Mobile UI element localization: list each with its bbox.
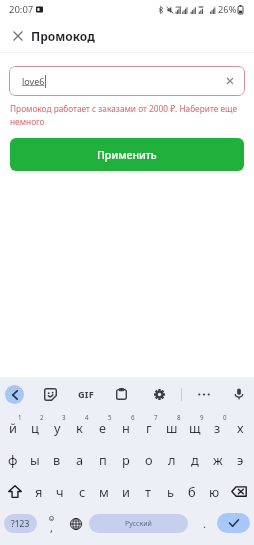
button[interactable]: г — [137, 411, 160, 443]
button[interactable]: ю — [203, 475, 225, 507]
button[interactable]: ц — [24, 411, 46, 443]
button[interactable]: ф — [2, 443, 24, 475]
button[interactable]: Очистить — [221, 72, 239, 90]
button[interactable]: ь — [159, 475, 181, 507]
button[interactable]: с — [71, 475, 93, 507]
staticText: Применить — [97, 148, 157, 162]
staticText: ц — [31, 419, 39, 436]
button[interactable]: love6 — [9, 66, 245, 96]
button[interactable]: ?123 — [4, 514, 37, 533]
button[interactable]: п — [91, 443, 114, 475]
staticText: г — [146, 419, 152, 436]
button[interactable]: ч — [49, 475, 71, 507]
button[interactable]: а — [68, 443, 91, 475]
button[interactable]: я — [28, 475, 49, 507]
staticText: ?123 — [11, 518, 30, 530]
button[interactable]: Backspace — [225, 475, 252, 507]
staticText: 6 — [131, 413, 135, 421]
button[interactable]: у — [46, 411, 68, 443]
button[interactable]: щ — [183, 411, 206, 443]
staticText: р — [122, 451, 130, 468]
button[interactable]: и — [115, 475, 137, 507]
staticText: ш — [166, 419, 178, 436]
button[interactable]: к — [68, 411, 91, 443]
staticText: ы — [30, 451, 40, 468]
staticText: у — [54, 419, 61, 436]
button[interactable]: ж — [206, 443, 229, 475]
staticText: 0 — [223, 413, 227, 421]
staticText: 5 — [108, 413, 112, 421]
staticText: 4 — [85, 413, 89, 421]
staticText: м — [99, 483, 109, 500]
staticText: о — [145, 451, 153, 468]
button[interactable]: в — [46, 443, 68, 475]
button[interactable]: б — [181, 475, 203, 507]
button[interactable]: Точка — [196, 515, 212, 531]
staticText: Промокод работает с заказами от 2000 ₽. … — [10, 103, 244, 127]
button[interactable]: ы — [24, 443, 46, 475]
staticText: е — [99, 419, 107, 436]
button[interactable]: Ещё — [196, 386, 212, 402]
staticText: х — [237, 419, 244, 436]
staticText: 26% — [218, 3, 237, 16]
staticText: п — [99, 451, 107, 468]
staticText: 1 — [18, 413, 22, 421]
staticText: 3 — [62, 413, 66, 421]
staticText: , — [50, 520, 53, 535]
staticText: love6 — [22, 75, 45, 87]
staticText: ь — [167, 483, 174, 500]
staticText: . — [203, 516, 206, 531]
staticText: в — [53, 451, 61, 468]
staticText: 9 — [200, 413, 204, 421]
staticText: 20:07 — [9, 3, 34, 16]
button[interactable]: д — [183, 443, 206, 475]
button[interactable]: Back — [5, 385, 24, 404]
staticText: э — [237, 451, 244, 468]
button[interactable]: Сменить язык — [67, 515, 84, 532]
staticText: ю — [209, 483, 220, 500]
button[interactable]: Голосовой ввод — [232, 387, 246, 401]
button[interactable]: Запятая — [42, 510, 60, 536]
button[interactable]: Применить — [10, 138, 244, 171]
staticText: я — [35, 483, 43, 500]
staticText: л — [168, 451, 176, 468]
staticText: з — [214, 419, 221, 436]
button[interactable]: н — [114, 411, 137, 443]
button[interactable]: Закрыть — [6, 24, 30, 48]
button[interactable]: л — [160, 443, 183, 475]
staticText: Русский — [125, 519, 152, 529]
button[interactable]: Стикеры — [42, 386, 58, 402]
staticText: 8 — [177, 413, 181, 421]
staticText: б — [188, 483, 196, 500]
button[interactable]: е — [91, 411, 114, 443]
button[interactable]: й — [2, 411, 24, 443]
staticText: к — [76, 419, 83, 436]
button[interactable]: Настройки — [152, 387, 166, 401]
button[interactable]: ш — [160, 411, 183, 443]
staticText: ж — [213, 451, 223, 468]
staticText: а — [76, 451, 84, 468]
button[interactable]: Shift — [2, 475, 28, 507]
button[interactable]: Русский — [89, 514, 188, 533]
staticText: 2 — [40, 413, 44, 421]
button[interactable]: Ввод — [217, 513, 250, 533]
button[interactable]: м — [93, 475, 115, 507]
staticText: т — [145, 483, 151, 500]
button[interactable]: о — [137, 443, 160, 475]
staticText: н — [122, 419, 130, 436]
button[interactable]: Буфер обмена — [114, 387, 128, 401]
staticText: ф — [8, 451, 18, 468]
staticText: д — [191, 451, 199, 468]
staticText: GIF — [78, 388, 94, 401]
button[interactable]: з — [206, 411, 229, 443]
staticText: 7 — [154, 413, 158, 421]
staticText: й — [9, 419, 17, 436]
button[interactable]: т — [137, 475, 159, 507]
staticText: щ — [189, 419, 201, 436]
button[interactable]: х — [229, 411, 252, 443]
button[interactable]: э — [229, 443, 252, 475]
staticText: ч — [56, 483, 64, 500]
button[interactable]: р — [114, 443, 137, 475]
staticText: Промокод — [31, 28, 95, 44]
staticText: с — [79, 483, 86, 500]
